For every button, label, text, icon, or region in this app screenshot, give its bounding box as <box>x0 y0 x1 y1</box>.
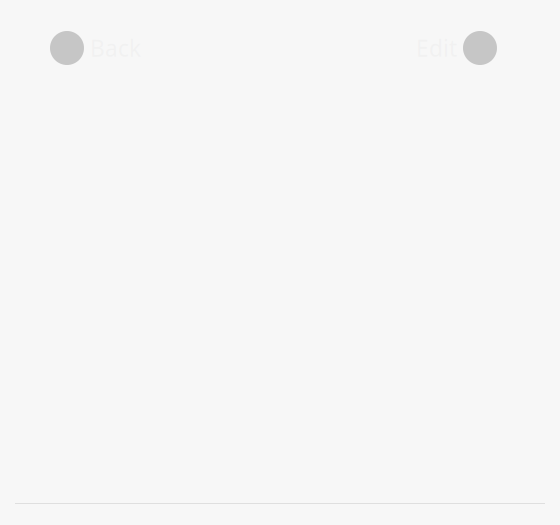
button[interactable]: Back <box>50 26 141 70</box>
button[interactable]: Edit <box>416 26 497 70</box>
